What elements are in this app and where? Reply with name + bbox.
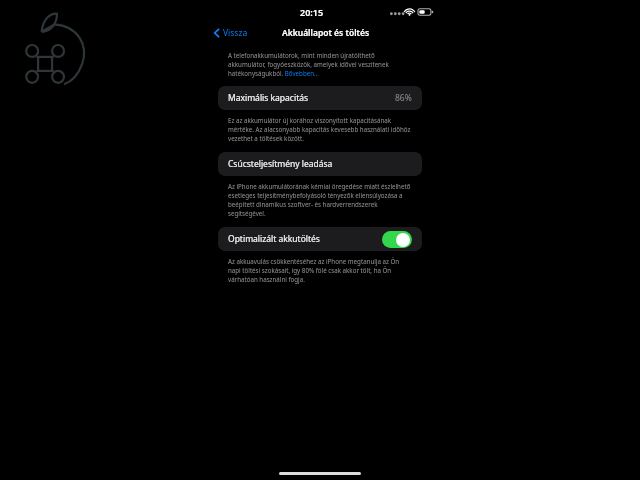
- button[interactable]: Maximális kapacitás: [218, 86, 422, 110]
- staticText: Ez az akkumulátor új korához viszonyítot…: [228, 116, 412, 143]
- staticText: Akkuállapot és töltés: [282, 27, 370, 39]
- button[interactable]: Optimalizált akkutöltés: [218, 227, 422, 251]
- staticText: 86%: [395, 92, 412, 104]
- staticText: Az akkuavulás csökkentéséhez az iPhone m…: [228, 257, 412, 284]
- staticText: Az iPhone akkumulátorának kémiai öregedé…: [228, 182, 412, 218]
- staticText: Vissza: [223, 27, 248, 39]
- staticText: 20:15: [300, 6, 324, 18]
- button[interactable]: Optimalizált akkutöltés kapcsoló: [382, 231, 412, 248]
- staticText: Optimalizált akkutöltés: [228, 233, 320, 245]
- button[interactable]: Csúcsteljesítmény leadása: [218, 152, 422, 176]
- button[interactable]: Vissza: [212, 25, 250, 41]
- staticText: Csúcsteljesítmény leadása: [228, 158, 333, 170]
- staticText: Maximális kapacitás: [228, 92, 309, 104]
- staticText: A telefonakkumulátorok, mint minden újra…: [228, 51, 412, 78]
